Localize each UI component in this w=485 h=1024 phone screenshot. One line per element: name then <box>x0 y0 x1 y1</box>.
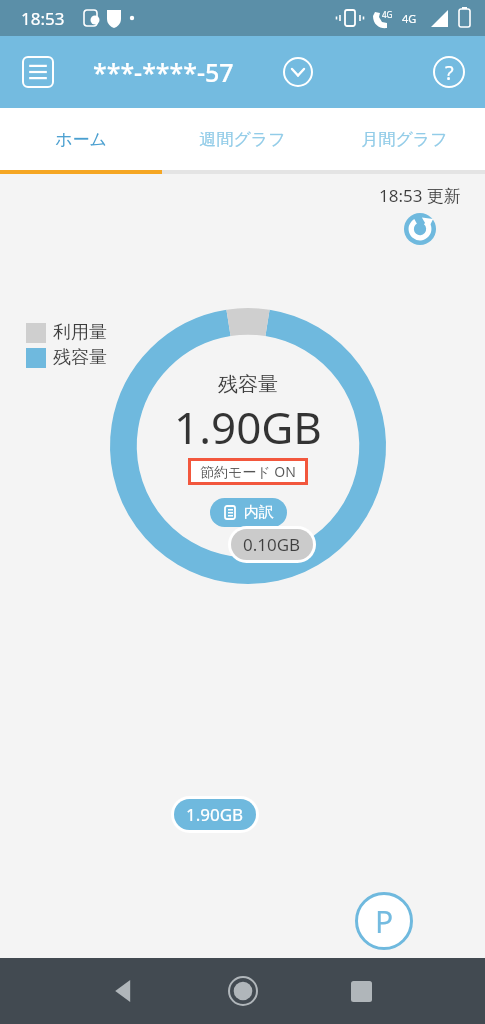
staticText: 内訳 <box>244 503 274 522</box>
staticText: 利用量 <box>53 321 107 344</box>
staticText: 4G <box>382 9 393 20</box>
staticText: 残容量 <box>218 372 278 397</box>
button[interactable]: 内訳 <box>210 498 287 527</box>
button[interactable]: P <box>333 892 434 958</box>
button[interactable]: Menu <box>20 54 56 90</box>
staticText: 4G <box>402 11 417 26</box>
staticText: P <box>375 901 394 942</box>
staticText: 節約モード ON <box>200 462 296 481</box>
button[interactable]: Back <box>100 967 148 1015</box>
staticText: 1.90GB <box>174 397 322 457</box>
button[interactable]: Recent apps <box>337 967 385 1015</box>
staticText: ? <box>445 59 454 86</box>
staticText: ホーム <box>55 129 107 150</box>
button[interactable]: 週間グラフ <box>161 108 323 170</box>
staticText: 18:53 <box>21 7 65 30</box>
staticText: 1.90GB <box>186 803 244 826</box>
button[interactable]: 月間グラフ <box>323 108 485 170</box>
staticText: 18:53 更新 <box>379 184 461 207</box>
button[interactable]: ホーム <box>0 108 161 170</box>
staticText: 0.10GB <box>243 533 301 556</box>
staticText: 週間グラフ <box>199 129 286 150</box>
button[interactable]: Help <box>427 50 471 94</box>
staticText: 残容量 <box>53 346 107 369</box>
button[interactable]: Expand <box>276 50 320 94</box>
staticText: 月間グラフ <box>361 129 448 150</box>
staticText: ***-****-57 <box>93 55 234 89</box>
button[interactable]: Home <box>219 967 267 1015</box>
button[interactable]: Refresh <box>402 211 438 247</box>
